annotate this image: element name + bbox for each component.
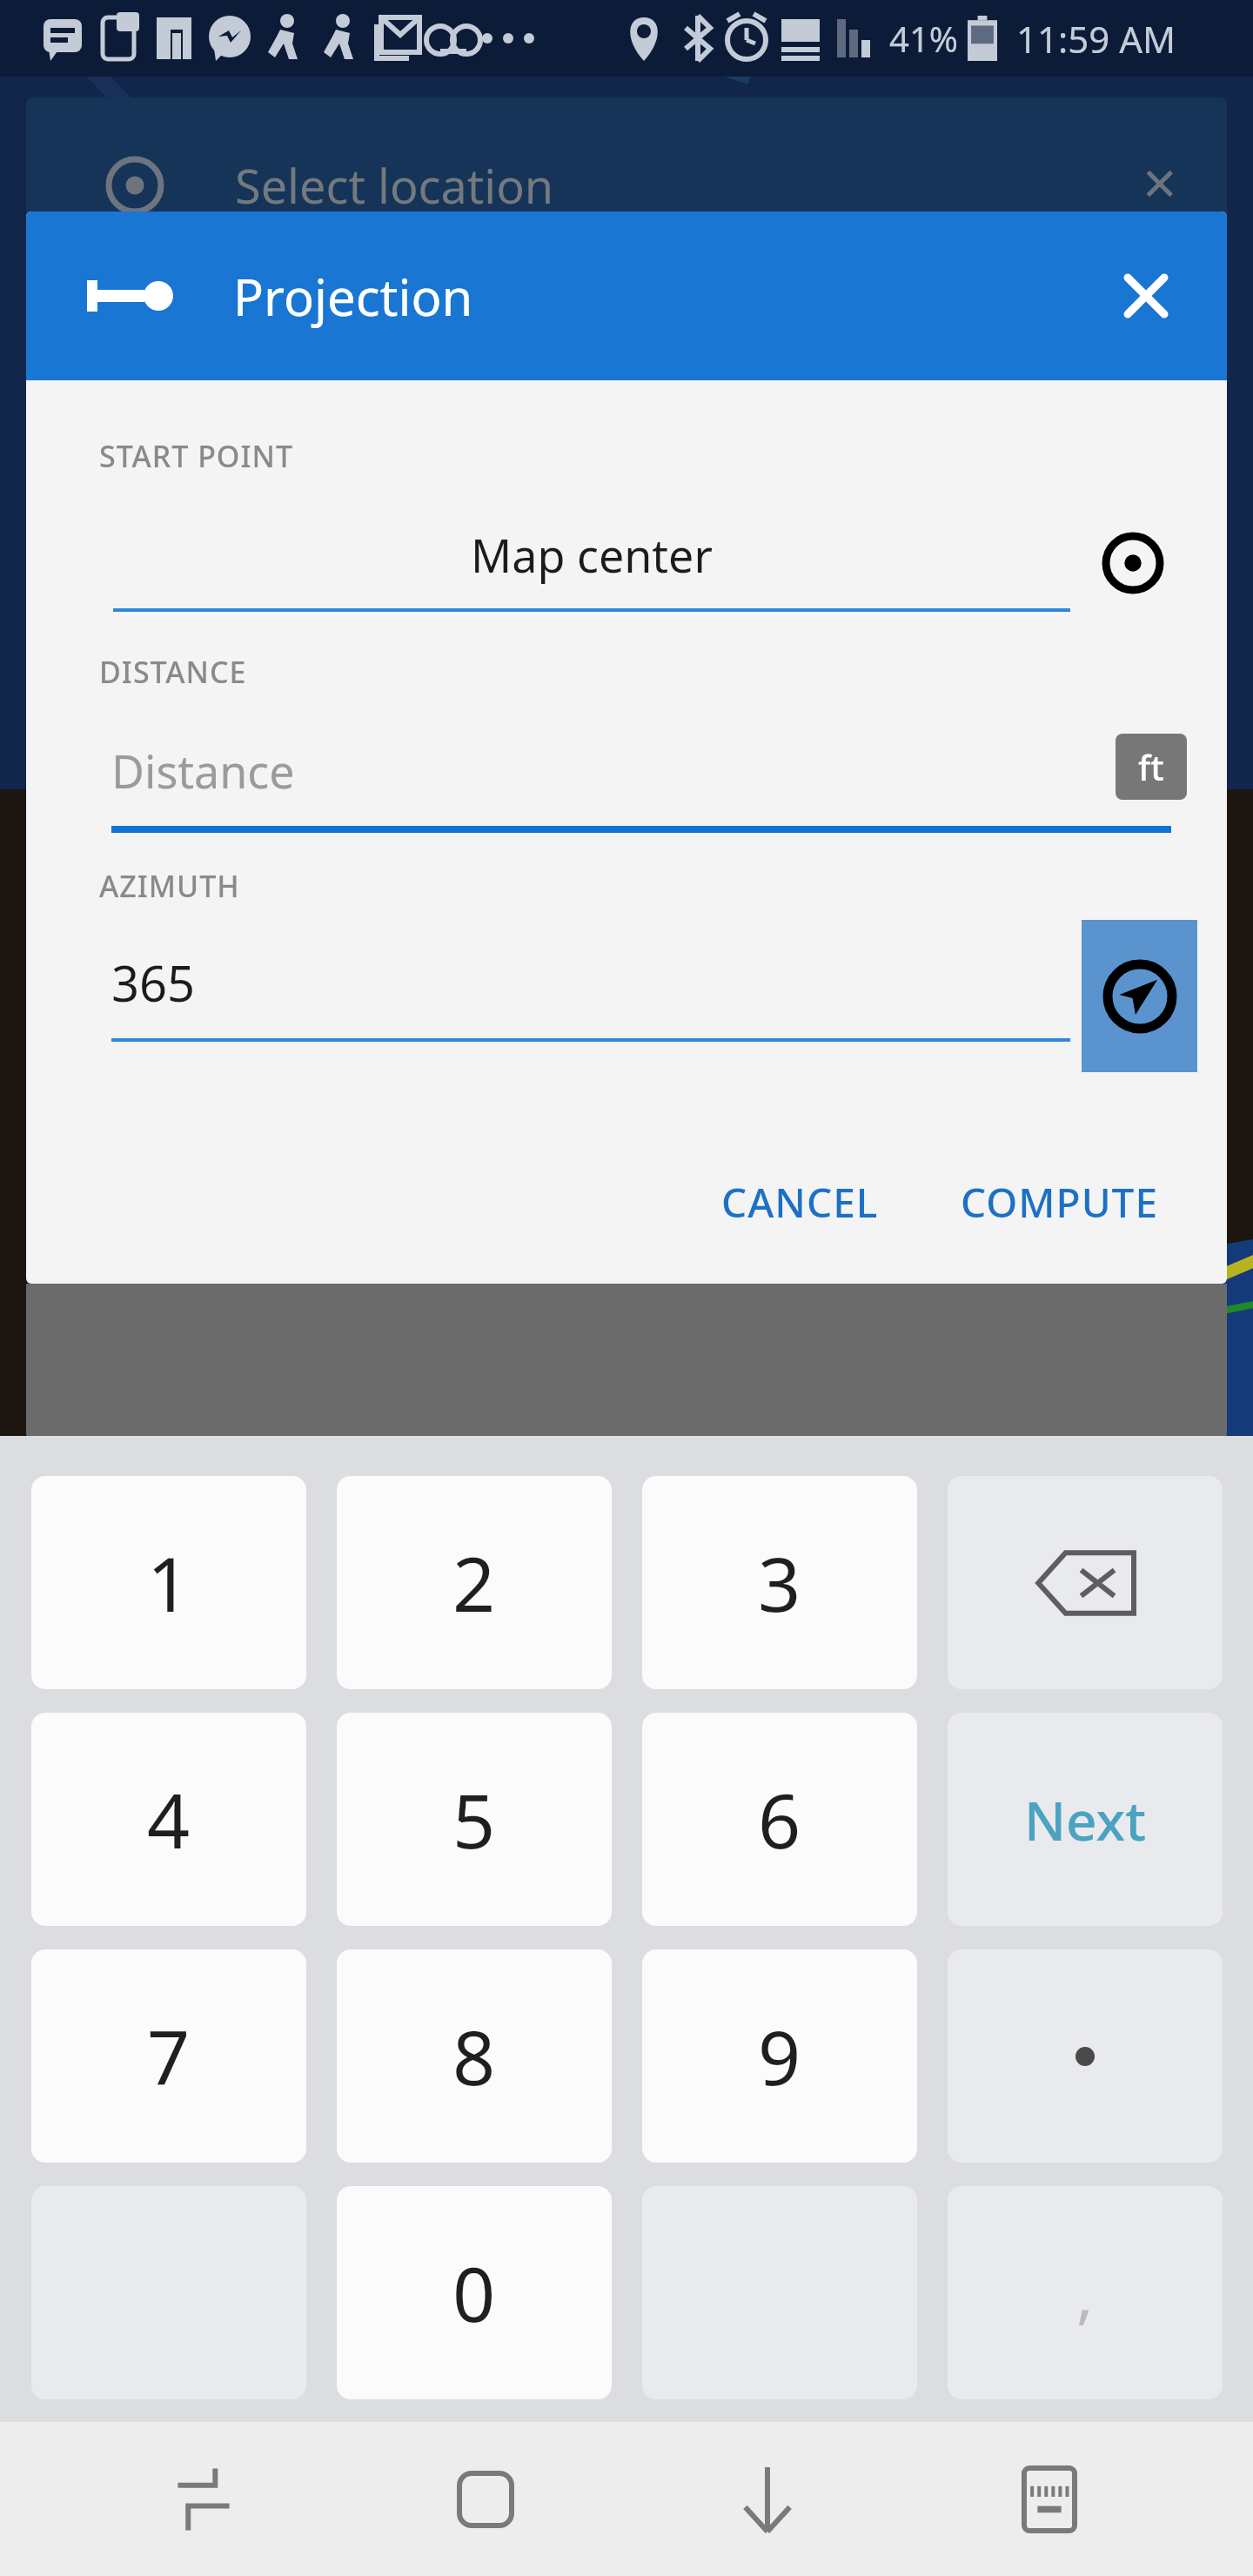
button[interactable]: 9 [642,1949,917,2163]
staticText: Next [1024,1783,1146,1856]
staticText: COMPUTE [961,1175,1159,1230]
button[interactable]: Delete [948,1476,1223,1689]
staticText: 365 [111,949,196,1016]
staticText: ft [1138,743,1164,790]
button[interactable]: 7 [31,1949,306,2163]
staticText: 7 [147,2005,191,2107]
staticText: 41% [889,15,958,62]
button[interactable]: 0 [337,2186,612,2399]
staticText: 6 [758,1768,801,1870]
button[interactable]: Switch keyboard [971,2422,1128,2576]
staticText: 8 [452,2005,496,2107]
button[interactable]: 5 [337,1713,612,1926]
staticText: Distance [111,740,295,802]
button[interactable]: Recents [125,2422,282,2576]
button[interactable]: 2 [337,1476,612,1689]
staticText: 11:59 AM [1016,14,1176,64]
staticText: AZIMUTH [99,866,240,906]
button[interactable]: 4 [31,1713,306,1926]
staticText: Map center [113,524,1070,586]
button[interactable]: Add [1063,1223,1194,1353]
button[interactable]: Hide keyboard [689,2422,846,2576]
button[interactable]: 8 [337,1949,612,2163]
staticText: 1 [147,1532,191,1633]
staticText: 0 [452,2242,496,2344]
button[interactable]: 365 [111,930,1069,1035]
button[interactable]: Pick start point [1089,520,1176,607]
staticText: , [1076,2251,1094,2336]
staticText: 2 [452,1532,496,1633]
staticText: 5 [452,1768,496,1870]
button[interactable]: Next [948,1713,1223,1926]
staticText: 4 [147,1768,191,1870]
staticText: DISTANCE [99,652,247,692]
button[interactable]: Distance [111,718,1112,822]
button[interactable]: Decimal point [948,1949,1223,2163]
staticText: Select location [235,153,554,218]
staticText: 9 [758,2005,801,2107]
button[interactable]: Close [1098,248,1194,344]
staticText: CANCEL [721,1175,879,1230]
staticText: ✕ [1141,158,1179,211]
button[interactable]: Home [407,2422,564,2576]
button[interactable]: 3 [642,1476,917,1689]
staticText: 3 [758,1532,801,1633]
button[interactable]: ft [1116,734,1187,800]
button[interactable]: Use compass heading [1082,920,1197,1072]
button[interactable]: Map center [113,502,1070,607]
button[interactable]: 6 [642,1713,917,1926]
button[interactable]: COMPUTE [931,1152,1189,1252]
staticText: Projection [233,262,473,331]
button[interactable]: 1 [31,1476,306,1689]
button[interactable]: CANCEL [692,1152,908,1252]
staticText: START POINT [99,436,294,476]
